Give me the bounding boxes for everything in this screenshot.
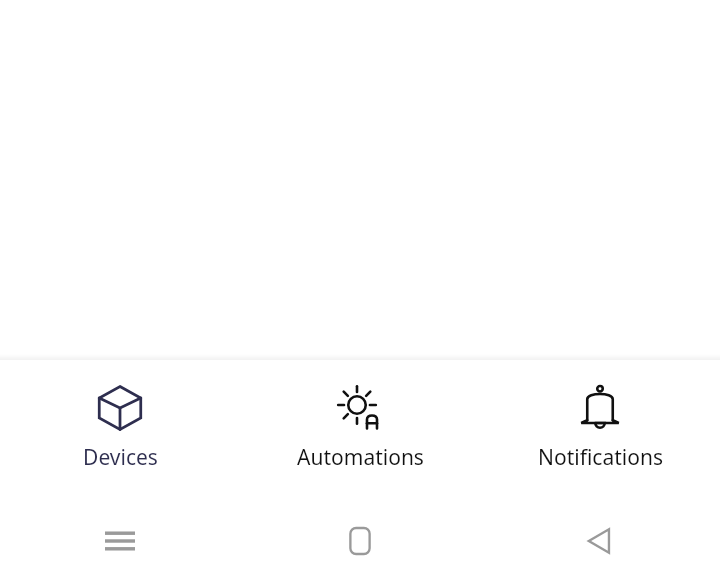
button[interactable]: Automations [240, 360, 480, 500]
button[interactable]: Devices [0, 360, 240, 500]
staticText: Automations [297, 443, 424, 472]
staticText: Devices [83, 443, 158, 472]
button[interactable]: Home [332, 513, 388, 569]
staticText: Notifications [538, 443, 663, 472]
button[interactable]: Back [572, 513, 628, 569]
button[interactable]: Notifications [480, 360, 720, 500]
button[interactable]: Recents [92, 513, 148, 569]
